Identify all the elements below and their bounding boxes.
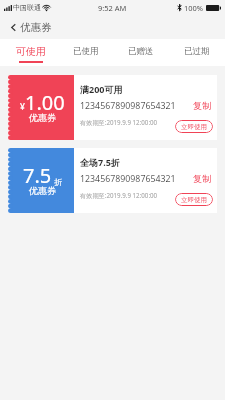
staticText: 1234567890987654321 bbox=[80, 173, 176, 185]
staticText: 中国联通 bbox=[13, 3, 41, 12]
button[interactable]: 立即使用 bbox=[175, 120, 213, 133]
staticText: 9:52 AM bbox=[98, 3, 127, 13]
staticText: 有效期至:2019.9.9 12:00:00 bbox=[80, 118, 158, 126]
staticText: 有效期至:2019.9.9 12:00:00 bbox=[80, 191, 158, 199]
button[interactable]: 复制 bbox=[191, 172, 213, 185]
staticText: 1234567890987654321 bbox=[80, 100, 176, 112]
button[interactable]: 复制 bbox=[191, 99, 213, 112]
staticText: ¥ bbox=[20, 101, 25, 113]
staticText: 复制 bbox=[193, 173, 211, 184]
staticText: 复制 bbox=[193, 100, 211, 111]
staticText: 优惠券 bbox=[29, 185, 56, 196]
staticText: 立即使用 bbox=[181, 123, 207, 131]
button[interactable]: 可使用 bbox=[3, 39, 58, 66]
staticText: 全场7.5折 bbox=[80, 156, 120, 168]
button[interactable]: 已赠送 bbox=[113, 39, 169, 66]
button[interactable]: 7.5 bbox=[8, 148, 217, 213]
staticText: 优惠券 bbox=[20, 21, 52, 34]
staticText: 7.5 bbox=[23, 162, 52, 189]
staticText: 满200可用 bbox=[80, 83, 123, 95]
staticText: 已使用 bbox=[73, 46, 99, 57]
staticText: 已过期 bbox=[184, 46, 210, 57]
button[interactable]: 已过期 bbox=[169, 39, 225, 66]
staticText: 可使用 bbox=[16, 45, 46, 58]
staticText: 折 bbox=[54, 177, 62, 187]
staticText: 优惠券 bbox=[29, 112, 56, 123]
button[interactable]: 立即使用 bbox=[175, 193, 213, 206]
staticText: 100% bbox=[184, 3, 204, 13]
staticText: 1.00 bbox=[25, 89, 65, 116]
staticText: 已赠送 bbox=[128, 46, 154, 57]
staticText: 立即使用 bbox=[181, 196, 207, 204]
button[interactable]: ¥ bbox=[8, 75, 217, 140]
button[interactable]: 已使用 bbox=[58, 39, 113, 66]
button[interactable]: Back bbox=[6, 20, 20, 34]
